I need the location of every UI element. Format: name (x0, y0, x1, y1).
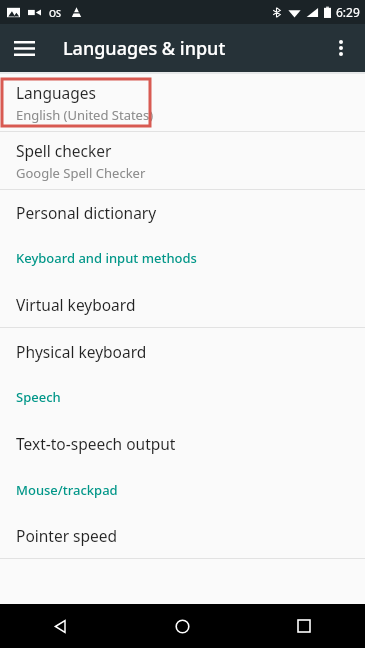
button[interactable]: Recent apps (243, 604, 365, 648)
staticText: Pointer speed (16, 525, 118, 546)
staticText: OS (49, 7, 62, 19)
button[interactable]: Languages (0, 74, 365, 131)
staticText: Keyboard and input methods (16, 249, 197, 267)
staticText: Physical keyboard (16, 341, 147, 362)
button[interactable]: Back (0, 604, 121, 648)
staticText: 6:29 (336, 4, 360, 20)
button[interactable]: Spell checker (0, 132, 365, 189)
button[interactable]: More options (317, 24, 365, 72)
staticText: Spell checker (16, 140, 112, 161)
button[interactable]: Text-to-speech output (0, 420, 365, 466)
staticText: Text-to-speech output (16, 433, 176, 454)
staticText: Speech (16, 388, 61, 406)
staticText: Languages & input (63, 36, 226, 61)
staticText: Virtual keyboard (16, 294, 136, 315)
button[interactable]: Open navigation drawer (0, 24, 48, 72)
staticText: Personal dictionary (16, 202, 157, 223)
button[interactable]: Home (121, 604, 243, 648)
staticText: Google Spell Checker (16, 164, 146, 182)
button[interactable]: Pointer speed (0, 513, 365, 558)
staticText: Mouse/trackpad (16, 481, 118, 499)
button[interactable]: Virtual keyboard (0, 281, 365, 327)
button[interactable]: Physical keyboard (0, 328, 365, 374)
staticText: Languages (16, 82, 96, 103)
button[interactable]: Personal dictionary (0, 190, 365, 235)
staticText: English (United States) (16, 106, 154, 124)
